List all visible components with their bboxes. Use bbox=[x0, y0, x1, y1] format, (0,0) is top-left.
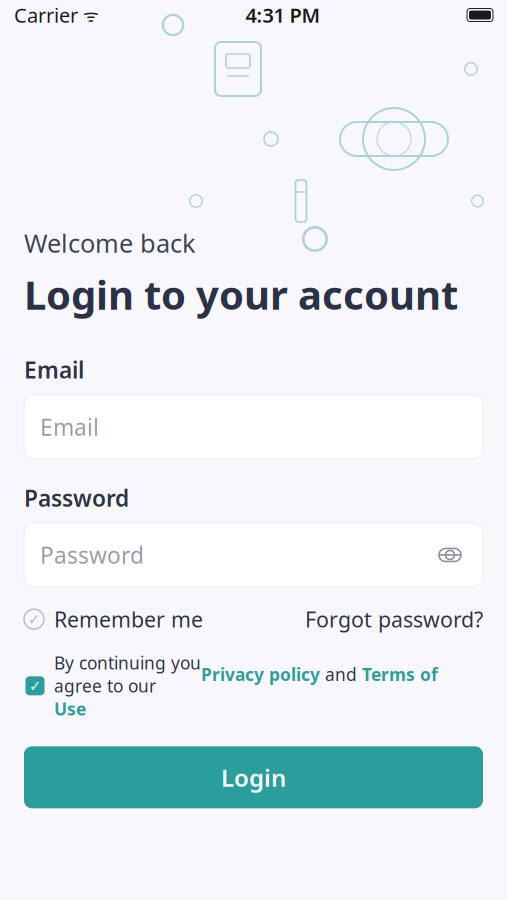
button[interactable]: Show password bbox=[433, 540, 467, 570]
staticText: ✓ bbox=[29, 677, 41, 694]
staticText: Terms of bbox=[362, 663, 438, 686]
staticText: ✓ bbox=[28, 611, 40, 627]
staticText: Password bbox=[40, 540, 144, 570]
button[interactable]: ✓ bbox=[24, 605, 203, 633]
staticText: Login bbox=[221, 761, 286, 793]
button[interactable]: Forgot password? bbox=[305, 605, 483, 633]
staticText: Forgot password? bbox=[305, 605, 483, 633]
staticText: 4:31 PM bbox=[245, 2, 320, 28]
staticText: By continuing you agree to our bbox=[54, 651, 201, 697]
button[interactable]: Privacy policy bbox=[201, 663, 320, 686]
staticText: Remember me bbox=[54, 605, 203, 633]
button[interactable]: Login bbox=[24, 746, 483, 808]
staticText: Email bbox=[40, 412, 99, 442]
button[interactable]: Use bbox=[54, 697, 86, 720]
staticText: Use bbox=[54, 697, 86, 720]
staticText: ᯤ bbox=[78, 3, 99, 26]
staticText: Login to your account bbox=[24, 268, 458, 321]
staticText: Password bbox=[24, 483, 129, 513]
staticText: Welcome back bbox=[24, 226, 196, 260]
staticText: Privacy policy bbox=[201, 663, 320, 686]
button[interactable]: Terms of bbox=[362, 663, 438, 686]
staticText: and bbox=[320, 663, 362, 686]
staticText: Carrier bbox=[14, 2, 78, 28]
staticText: Email bbox=[24, 355, 84, 385]
button[interactable]: Agree to terms bbox=[24, 675, 46, 697]
